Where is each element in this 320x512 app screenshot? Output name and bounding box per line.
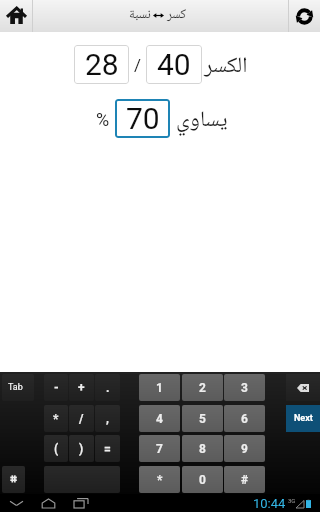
button[interactable]: ) (69, 435, 94, 462)
staticText: 0 (199, 473, 206, 487)
button[interactable]: 1 (139, 374, 180, 401)
button[interactable]: 8 (182, 435, 223, 462)
button[interactable]: - (44, 374, 68, 401)
button[interactable]: Recents (68, 494, 94, 512)
staticText: / (79, 412, 84, 426)
staticText: Tab (8, 382, 23, 393)
staticText: 40 (157, 47, 191, 82)
staticText: 3G (288, 497, 296, 504)
button[interactable]: Tab (2, 374, 34, 401)
button[interactable]: ( (44, 435, 68, 462)
staticText: 10:44 (253, 496, 286, 511)
staticText: 6 (241, 412, 248, 426)
button[interactable]: Refresh (289, 0, 320, 32)
staticText: يساوي (176, 102, 228, 139)
button[interactable]: Next (286, 405, 320, 432)
staticText: 70 (126, 101, 160, 136)
button[interactable]: 4 (139, 405, 180, 432)
staticText: 9 (241, 442, 248, 456)
staticText: نسبة (129, 4, 151, 26)
staticText: كسر (167, 4, 187, 26)
button[interactable]: 40 (146, 45, 202, 84)
button[interactable]: 6 (224, 405, 265, 432)
staticText: 5 (199, 412, 206, 426)
button[interactable]: Delete (286, 374, 320, 401)
staticText: Next (294, 413, 313, 424)
button[interactable]: / (69, 405, 94, 432)
staticText: , (106, 412, 109, 426)
staticText: * (53, 412, 59, 426)
button[interactable]: 70 (115, 99, 170, 138)
staticText: 2 (199, 381, 206, 395)
button[interactable]: # (224, 466, 265, 493)
button[interactable]: 0 (182, 466, 223, 493)
staticText: * (157, 473, 163, 487)
button[interactable]: * (44, 405, 68, 432)
staticText: 7 (156, 442, 163, 456)
button[interactable]: ⌗ (2, 466, 25, 493)
button[interactable]: 7 (139, 435, 180, 462)
staticText: / (134, 55, 142, 75)
staticText: + (78, 381, 85, 395)
staticText: % (96, 109, 110, 130)
staticText: الكسر (204, 48, 248, 85)
staticText: 1 (156, 381, 163, 395)
staticText: ) (79, 442, 84, 456)
button[interactable]: Back (3, 494, 29, 512)
button[interactable]: 9 (224, 435, 265, 462)
staticText: - (54, 381, 59, 395)
staticText: 8 (199, 442, 206, 456)
staticText: ( (54, 442, 59, 456)
button[interactable]: Home (35, 494, 61, 512)
staticText: 28 (85, 47, 119, 82)
button[interactable]: 5 (182, 405, 223, 432)
button[interactable]: + (69, 374, 94, 401)
staticText: = (104, 442, 111, 456)
button[interactable]: 3 (224, 374, 265, 401)
button[interactable]: . (95, 374, 120, 401)
staticText: ⌗ (10, 472, 18, 487)
button[interactable]: * (139, 466, 180, 493)
staticText: 4 (156, 412, 163, 426)
button[interactable]: = (95, 435, 120, 462)
staticText: 3 (241, 381, 248, 395)
button[interactable]: , (95, 405, 120, 432)
button[interactable]: 28 (74, 45, 129, 84)
staticText: . (106, 381, 110, 395)
staticText: # (241, 473, 249, 487)
button[interactable]: 2 (182, 374, 223, 401)
button[interactable]: Home (0, 0, 32, 32)
